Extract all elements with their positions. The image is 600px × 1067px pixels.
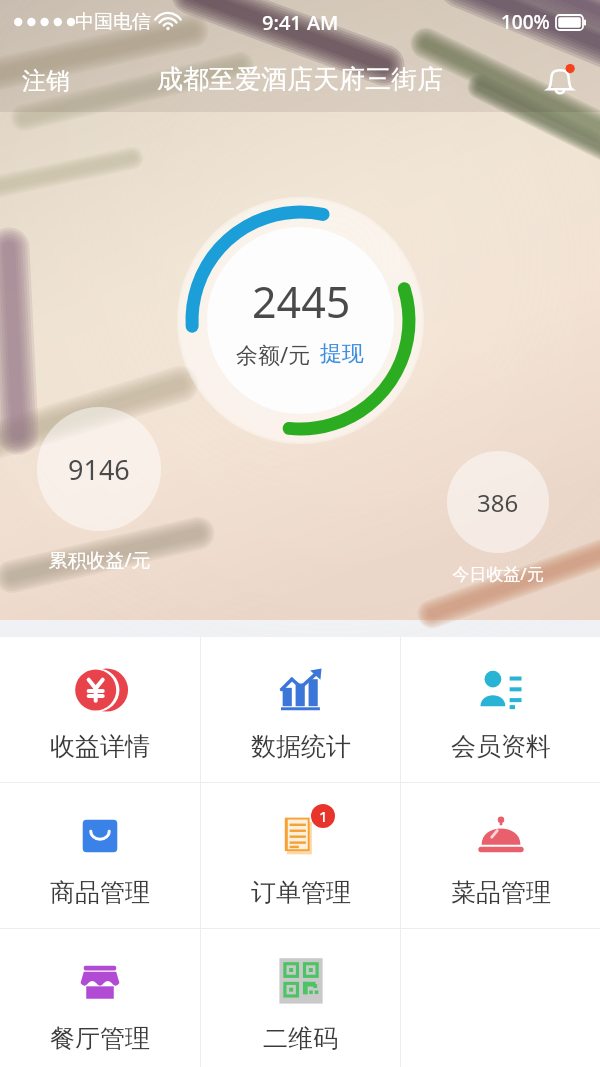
staticText: 386 [477, 486, 519, 519]
button[interactable]: 9146 [37, 407, 161, 531]
button[interactable]: Notifications [534, 54, 586, 106]
staticText: 餐厅管理 [50, 1023, 150, 1054]
button[interactable]: 会员资料 [401, 637, 600, 782]
staticText: 会员资料 [451, 731, 551, 762]
staticText: 9:41 AM [262, 9, 339, 36]
button[interactable]: 注销 [8, 58, 84, 104]
staticText: 成都至爱酒店天府三街店 [157, 63, 443, 96]
staticText: 菜品管理 [451, 877, 551, 908]
staticText: 中国电信 [75, 10, 151, 34]
staticText: 收益详情 [50, 731, 150, 762]
staticText: 100% [501, 9, 550, 35]
button[interactable]: 386 [447, 451, 549, 553]
staticText: 注销 [22, 66, 70, 96]
staticText: 1 [319, 806, 328, 826]
staticText: 数据统计 [251, 731, 351, 762]
button[interactable]: 餐厅管理 [0, 929, 200, 1067]
button[interactable]: 二维码 [201, 929, 400, 1067]
staticText: 商品管理 [50, 877, 150, 908]
button[interactable]: 1 [201, 783, 400, 928]
staticText: 二维码 [263, 1023, 338, 1054]
staticText: 订单管理 [251, 877, 351, 908]
button[interactable]: 提现 [318, 338, 366, 370]
staticText: 9146 [68, 451, 130, 488]
button[interactable]: 数据统计 [201, 637, 400, 782]
button[interactable]: 商品管理 [0, 783, 200, 928]
staticText: 累积收益/元 [48, 547, 151, 573]
staticText: 余额/元 [236, 339, 311, 369]
staticText: 2445 [252, 272, 351, 331]
staticText: 提现 [320, 340, 364, 368]
staticText: 今日收益/元 [452, 562, 544, 585]
button[interactable]: 收益详情 [0, 637, 200, 782]
button[interactable]: 菜品管理 [401, 783, 600, 928]
